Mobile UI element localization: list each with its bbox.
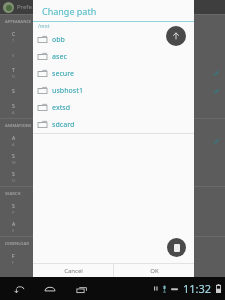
staticText: S: [12, 103, 15, 110]
button[interactable]: usbhost1: [33, 82, 194, 99]
staticText: APPEARANCE: [5, 19, 32, 24]
staticText: F: [12, 253, 15, 260]
staticText: O: [12, 178, 16, 183]
button[interactable]: sdcard: [33, 116, 194, 133]
button[interactable]: Cancel: [33, 264, 113, 277]
staticText: secure: [52, 69, 75, 79]
staticText: M: [12, 160, 16, 165]
staticText: F: [12, 260, 15, 265]
staticText: A: [12, 221, 16, 228]
button[interactable]: Back: [9, 279, 29, 299]
staticText: A: [12, 110, 15, 115]
staticText: 11:32: [183, 281, 212, 296]
staticText: Cancel: [64, 267, 83, 275]
button[interactable]: Recent apps: [71, 279, 91, 299]
staticText: T: [12, 38, 15, 43]
staticText: ANIMATIONS: [5, 123, 32, 128]
staticText: S: [12, 88, 15, 95]
staticText: asec: [52, 52, 67, 62]
staticText: T: [12, 67, 15, 74]
staticText: V: [12, 53, 15, 58]
button[interactable]: Up one level: [166, 26, 186, 46]
staticText: SEARCH: [5, 191, 21, 196]
button[interactable]: asec: [33, 48, 194, 65]
staticText: Prefe: [17, 3, 32, 11]
staticText: obb: [52, 35, 65, 45]
staticText: sdcard: [52, 120, 75, 130]
staticText: A: [12, 142, 15, 147]
staticText: Change path: [42, 5, 97, 17]
button[interactable]: Select storage: [167, 238, 186, 257]
staticText: P: [12, 210, 15, 215]
staticText: D: [12, 74, 15, 79]
staticText: extsd: [52, 103, 71, 113]
button[interactable]: obb: [33, 31, 194, 48]
button[interactable]: extsd: [33, 99, 194, 116]
button[interactable]: secure: [33, 65, 194, 82]
staticText: S: [12, 203, 15, 210]
button[interactable]: OK: [114, 264, 194, 277]
staticText: DOWNLOAD: [5, 241, 30, 246]
staticText: C: [12, 31, 16, 38]
staticText: OK: [150, 267, 159, 275]
staticText: S: [12, 171, 15, 178]
staticText: usbhost1: [52, 86, 83, 96]
staticText: /mnt: [38, 23, 50, 30]
button[interactable]: Home: [40, 279, 60, 299]
staticText: S: [12, 228, 15, 233]
staticText: S: [12, 153, 15, 160]
staticText: A: [12, 135, 16, 142]
